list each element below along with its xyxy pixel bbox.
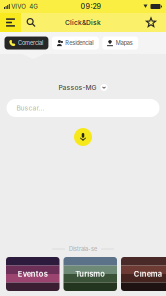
staticText: Residencial: [65, 40, 93, 46]
button[interactable]: Trocar cidade: [100, 84, 107, 91]
button[interactable]: Mapas: [102, 36, 138, 49]
button[interactable]: Eventos: [6, 257, 59, 291]
staticText: Cinema: [134, 269, 162, 278]
staticText: Distraia-se: [69, 246, 97, 252]
staticText: Mapas: [116, 40, 133, 46]
staticText: VIVO: [11, 3, 26, 10]
staticText: Buscar...: [16, 104, 44, 112]
button[interactable]: Favoritos: [141, 13, 161, 32]
staticText: 09:29: [80, 2, 101, 11]
button[interactable]: Buscar: [21, 13, 41, 32]
button[interactable]: Residencial: [52, 36, 99, 49]
button[interactable]: Buscar...: [6, 99, 159, 117]
button[interactable]: Busca por voz: [74, 128, 92, 146]
staticText: Eventos: [18, 269, 48, 278]
staticText: Passos-MG: [58, 83, 96, 92]
staticText: Click&Disk: [65, 18, 101, 27]
staticText: Turismo: [75, 269, 105, 278]
button[interactable]: Menu: [0, 13, 21, 32]
button[interactable]: Cinema: [121, 257, 166, 291]
button[interactable]: Comercial: [4, 36, 48, 49]
button[interactable]: Turismo: [63, 257, 117, 291]
staticText: 4G: [29, 3, 38, 10]
staticText: Comercial: [18, 40, 43, 46]
